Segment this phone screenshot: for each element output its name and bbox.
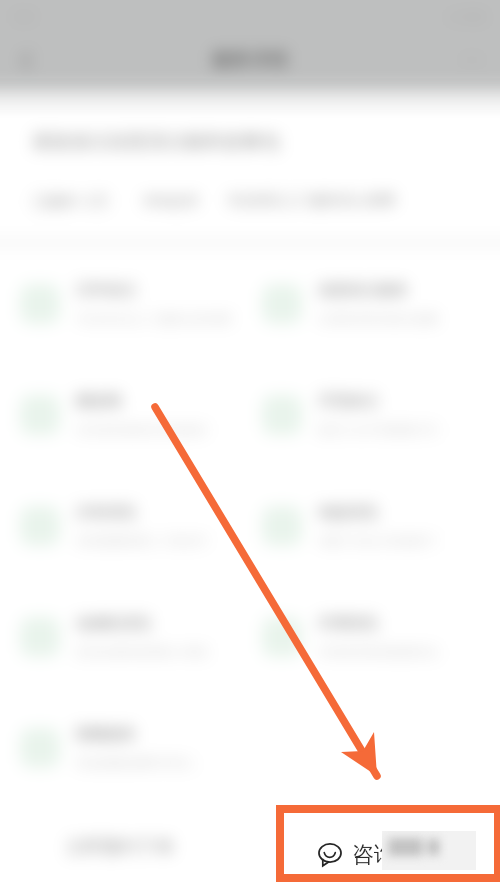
staticText: 立即预约下单: [66, 836, 174, 859]
staticText: 沙发清洗: [76, 503, 136, 522]
staticText: 擦玻璃: [76, 392, 121, 411]
button[interactable]: 立即预约下单: [40, 821, 200, 873]
button[interactable]: 沙发清洗: [0, 470, 250, 581]
button[interactable]: 地毯清洗: [250, 470, 500, 581]
staticText: 已服务1.2万: [33, 191, 109, 210]
staticText: 油烟机清洗: [76, 614, 151, 633]
button[interactable]: 油烟机清洗: [0, 581, 250, 692]
staticText: 除螨服务: [76, 725, 136, 744]
button[interactable]: 深度保洁服务: [250, 248, 500, 359]
button[interactable]: 除螨服务: [0, 692, 250, 803]
button[interactable]: 擦玻璃: [0, 359, 250, 470]
staticText: 家政保洁深度清洁服务套餐包: [33, 130, 280, 154]
staticText: 专业持证上门服务安心保障: [227, 192, 395, 210]
button[interactable]: 开荒保洁: [250, 359, 500, 470]
button[interactable]: 空调清洗: [250, 581, 500, 692]
staticText: 内外双面清洗光亮如新好: [76, 422, 208, 437]
staticText: 开荒保洁: [318, 392, 378, 411]
staticText: 空调清洗: [318, 614, 378, 633]
staticText: 地毯清洗: [318, 503, 378, 522]
button[interactable]: Back: [4, 38, 48, 82]
button[interactable]: 咨询客服: [284, 813, 494, 874]
staticText: 咨询客服: [352, 841, 440, 869]
button[interactable]: 日常保洁: [0, 248, 250, 359]
staticText: 日常保洁: [76, 281, 136, 300]
staticText: 服务详情: [212, 48, 288, 72]
staticText: 99%好评: [143, 191, 199, 210]
staticText: 深度保洁服务: [318, 281, 408, 300]
